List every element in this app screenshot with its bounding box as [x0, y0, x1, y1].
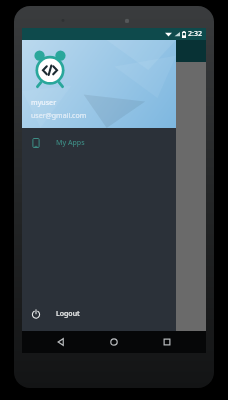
staticText: user@gmail.com [31, 111, 87, 121]
button[interactable]: My Apps [22, 132, 176, 154]
staticText: My Apps [56, 138, 85, 148]
button[interactable]: myuser [22, 40, 176, 128]
button[interactable]: Add [171, 293, 197, 319]
button[interactable]: Recent apps [153, 331, 181, 353]
button[interactable]: Home [100, 331, 128, 353]
button[interactable]: Back [47, 331, 75, 353]
staticText: 2:32 [188, 29, 202, 39]
staticText: Logout [56, 309, 80, 319]
button[interactable]: Logout [22, 303, 176, 325]
staticText: myuser [31, 98, 57, 108]
